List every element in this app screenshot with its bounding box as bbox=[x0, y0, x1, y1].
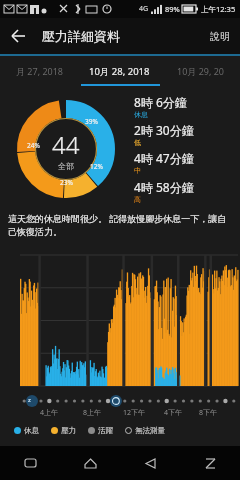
button[interactable]: Home bbox=[60, 446, 120, 480]
staticText: 89% bbox=[165, 4, 180, 14]
staticText: 活躍 bbox=[98, 426, 113, 435]
staticText: 12% bbox=[90, 162, 103, 171]
staticText: 無法測量 bbox=[135, 426, 165, 435]
staticText: 4時 47分鐘 bbox=[134, 150, 194, 166]
button[interactable]: Back bbox=[0, 18, 36, 54]
staticText: 高 bbox=[134, 195, 141, 204]
staticText: 4G bbox=[139, 4, 149, 14]
staticText: 4上午 bbox=[40, 408, 59, 418]
staticText: 2時 30分鐘 bbox=[134, 122, 194, 138]
staticText: 8上午 bbox=[83, 408, 102, 418]
button[interactable]: 月 27, 2018 bbox=[0, 56, 78, 86]
staticText: 10月 28, 2018 bbox=[89, 65, 150, 78]
button[interactable]: 活躍 bbox=[88, 426, 113, 435]
button[interactable]: Split screen bbox=[180, 446, 240, 480]
staticText: 全部 bbox=[58, 161, 74, 171]
staticText: 中 bbox=[134, 166, 141, 175]
staticText: 10月 29, 20 bbox=[177, 65, 224, 77]
staticText: 月 27, 2018 bbox=[16, 65, 63, 77]
staticText: 壓力 bbox=[61, 426, 76, 435]
button[interactable]: 壓力 bbox=[51, 426, 76, 435]
button[interactable]: 休息 bbox=[14, 426, 39, 435]
button[interactable]: 10月 29, 20 bbox=[161, 56, 240, 86]
staticText: 8下午 bbox=[199, 408, 218, 418]
staticText: 低 bbox=[134, 138, 141, 147]
staticText: 23% bbox=[60, 178, 73, 187]
staticText: 上午12:35 bbox=[201, 4, 236, 14]
staticText: 4時 58分鐘 bbox=[134, 179, 194, 195]
staticText: z bbox=[28, 396, 31, 404]
staticText: 12下午 bbox=[123, 408, 146, 418]
staticText: 44 bbox=[52, 128, 80, 161]
staticText: 壓力詳細資料 bbox=[42, 28, 120, 44]
staticText: 說明 bbox=[210, 30, 230, 43]
button[interactable]: 說明 bbox=[200, 22, 240, 51]
staticText: 休息 bbox=[24, 426, 39, 435]
staticText: 8時 6分鐘 bbox=[134, 94, 187, 110]
staticText: 休息 bbox=[134, 110, 148, 119]
button[interactable]: 10月 28, 2018 bbox=[78, 56, 161, 86]
button[interactable]: Recents bbox=[0, 446, 60, 480]
button[interactable]: 無法測量 bbox=[125, 426, 165, 435]
staticText: 24% bbox=[27, 141, 40, 150]
staticText: 這天您的休息時間很少。 記得放慢腳步休息一下，讓自己恢復活力。 bbox=[8, 212, 232, 237]
staticText: 39% bbox=[85, 117, 98, 126]
button[interactable]: Back bbox=[120, 446, 180, 480]
staticText: 4下午 bbox=[164, 408, 183, 418]
